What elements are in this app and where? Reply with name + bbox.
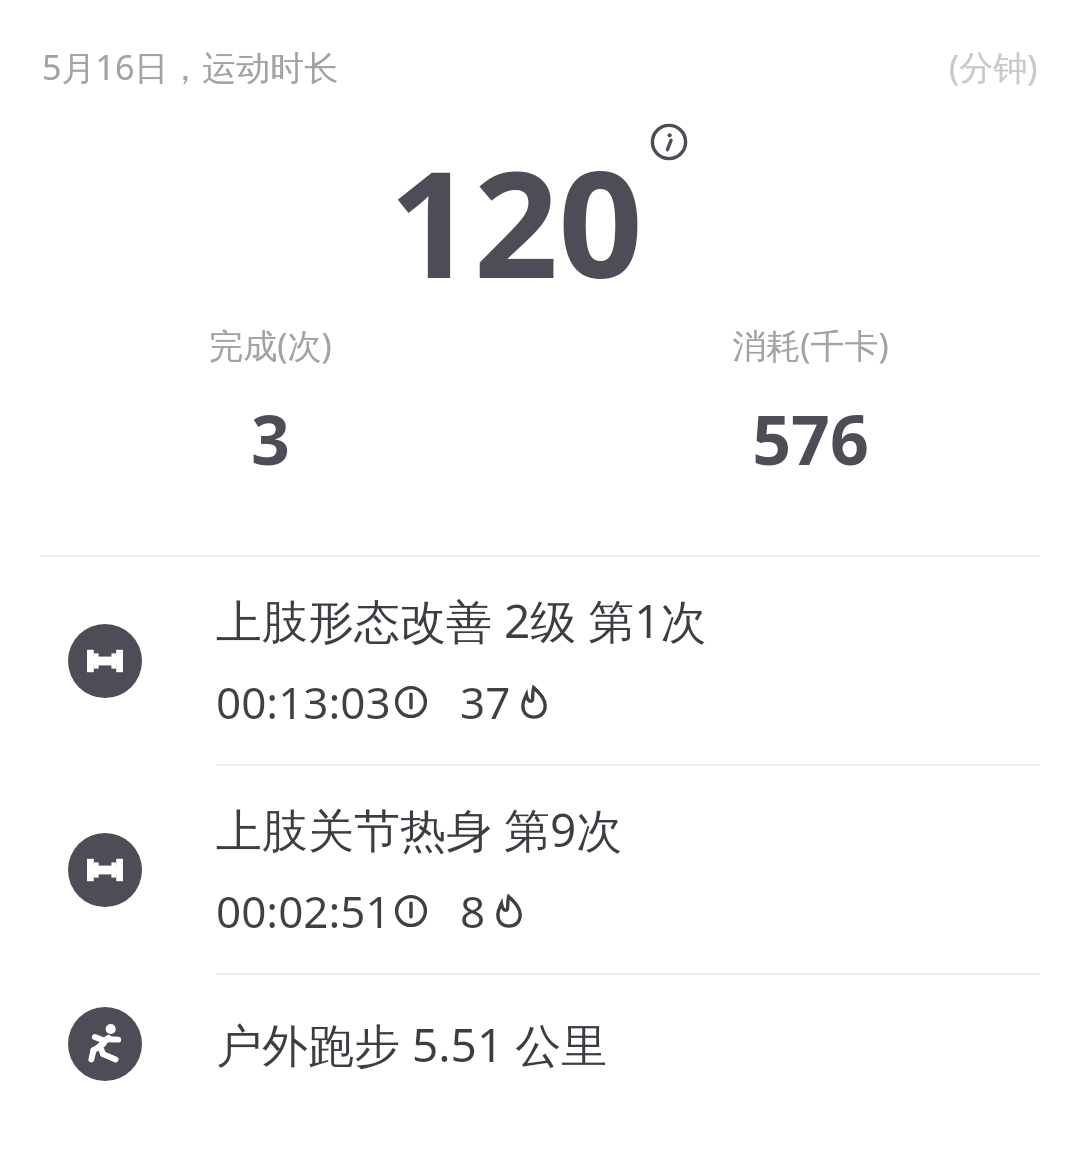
button[interactable]: 上肢形态改善 2级 第1次 [0,557,1080,764]
staticText: (分钟) [949,44,1038,90]
button[interactable]: 消耗(千卡) [540,322,1080,485]
button[interactable]: 说明 [647,120,691,164]
staticText: 576 [752,392,869,485]
staticText: 120 [389,120,643,322]
staticText: 上肢形态改善 2级 第1次 [216,589,707,652]
staticText: 5月16日，运动时长 [42,44,339,90]
staticText: 户外跑步 5.51 公里 [216,1013,608,1076]
staticText: 37 [460,672,511,732]
staticText: 00:02:51 [216,881,391,941]
staticText: 8 [460,881,486,941]
staticText: 完成(次) [209,322,332,368]
staticText: 3 [251,392,290,485]
button[interactable]: 上肢关节热身 第9次 [0,766,1080,973]
staticText: 上肢关节热身 第9次 [216,798,623,861]
button[interactable]: 户外跑步 5.51 公里 [0,975,1080,1113]
staticText: 00:13:03 [216,672,391,732]
staticText: 消耗(千卡) [732,322,889,368]
button[interactable]: 完成(次) [0,322,540,485]
